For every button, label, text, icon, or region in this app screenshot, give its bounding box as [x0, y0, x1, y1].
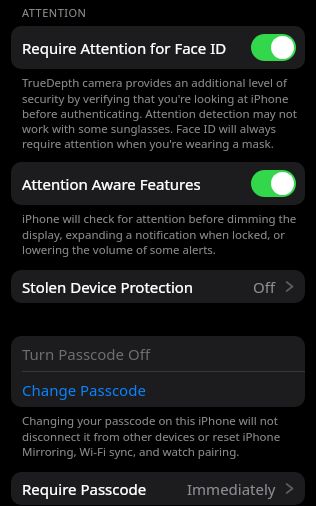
button[interactable]: Require Attention for Face ID — [11, 26, 305, 69]
staticText: Immediately — [187, 479, 276, 499]
staticText: iPhone will check for attention before d… — [22, 211, 301, 257]
button[interactable]: Turn Passcode Off — [11, 336, 305, 371]
button[interactable]: Attention Aware Features — [11, 162, 305, 205]
button[interactable]: Require Passcode — [11, 472, 305, 505]
staticText: Stolen Device Protection — [22, 277, 253, 297]
staticText: Require Passcode — [22, 479, 187, 499]
staticText: Turn Passcode Off — [22, 344, 150, 364]
button[interactable]: On — [251, 170, 296, 197]
staticText: Require Attention for Face ID — [22, 38, 251, 58]
button[interactable]: On — [251, 34, 296, 61]
staticText: TrueDepth camera provides an additional … — [22, 75, 301, 151]
staticText: Off — [253, 277, 276, 297]
staticText: Changing your passcode on this iPhone wi… — [22, 413, 301, 459]
staticText: ATTENTION — [22, 5, 87, 20]
button[interactable]: Stolen Device Protection — [11, 270, 305, 303]
staticText: Change Passcode — [22, 380, 146, 400]
button[interactable]: Change Passcode — [11, 372, 305, 407]
staticText: Attention Aware Features — [22, 174, 251, 194]
